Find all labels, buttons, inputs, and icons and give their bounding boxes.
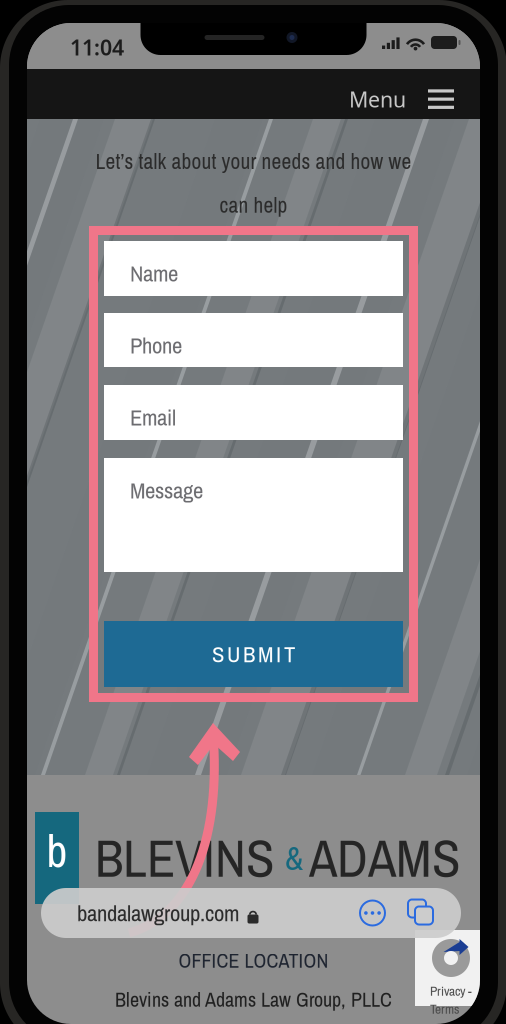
- button[interactable]: S U B M I T: [104, 621, 403, 687]
- staticText: Message: [130, 475, 203, 505]
- staticText: b: [46, 820, 67, 881]
- staticText: bandalawgroup.com: [77, 898, 239, 928]
- staticText: 11:04: [70, 33, 124, 61]
- button[interactable]: Name: [104, 241, 403, 296]
- staticText: Name: [130, 258, 178, 288]
- staticText: Let’s talk about your needs and how we: [95, 147, 411, 176]
- staticText: Menu: [349, 85, 406, 113]
- staticText: S U B M I T: [212, 639, 295, 669]
- staticText: Phone: [130, 330, 182, 360]
- staticText: Privacy - Terms: [430, 982, 472, 1018]
- staticText: ADAMS: [309, 823, 460, 893]
- staticText: Email: [130, 402, 176, 432]
- button[interactable]: Tabs: [408, 899, 435, 926]
- button[interactable]: Message: [104, 458, 403, 572]
- staticText: OFFICE LOCATION: [178, 947, 328, 974]
- staticText: Blevins and Adams Law Group, PLLC: [115, 986, 392, 1013]
- button[interactable]: More: [359, 899, 386, 926]
- staticText: can help: [219, 191, 287, 219]
- staticText: &: [285, 836, 303, 880]
- button[interactable]: Menu: [349, 85, 406, 113]
- button[interactable]: Email: [104, 385, 403, 440]
- staticText: BLEVINS: [95, 823, 274, 893]
- button[interactable]: Phone: [104, 313, 403, 367]
- button[interactable]: Open menu: [428, 90, 454, 109]
